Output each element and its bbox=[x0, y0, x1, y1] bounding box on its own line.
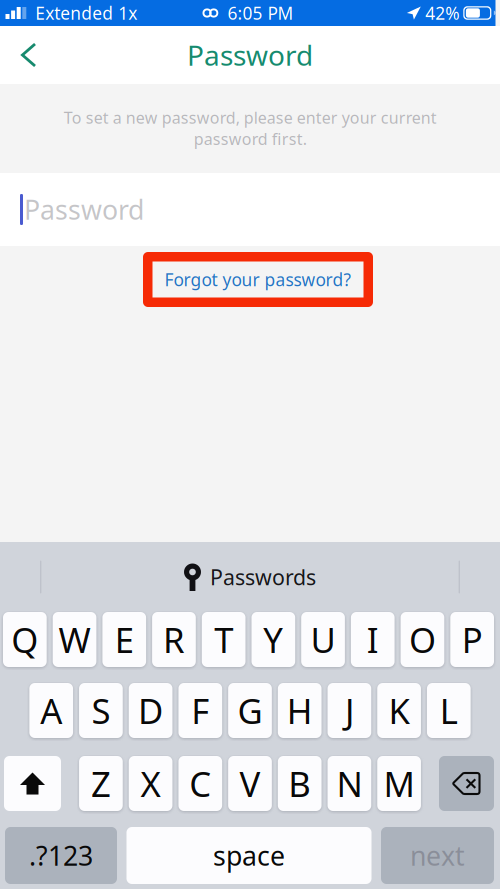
staticText: V bbox=[239, 760, 260, 806]
staticText: O bbox=[409, 616, 436, 662]
button[interactable]: .?123 bbox=[5, 827, 117, 884]
button[interactable]: N bbox=[328, 756, 371, 811]
button[interactable]: Z bbox=[79, 756, 123, 811]
staticText: Passwords bbox=[210, 563, 316, 591]
staticText: H bbox=[287, 687, 313, 733]
button[interactable]: E bbox=[102, 612, 146, 667]
button[interactable]: G bbox=[228, 683, 272, 738]
button[interactable]: Forgot your password? bbox=[143, 252, 373, 307]
staticText: F bbox=[191, 687, 209, 733]
button[interactable]: O bbox=[401, 612, 444, 667]
button[interactable]: R bbox=[152, 612, 196, 667]
staticText: Password bbox=[24, 192, 144, 227]
staticText: Z bbox=[91, 760, 111, 806]
staticText: B bbox=[288, 760, 311, 806]
staticText: Forgot your password? bbox=[164, 268, 351, 291]
staticText: N bbox=[336, 760, 362, 806]
button[interactable]: Q bbox=[3, 612, 47, 667]
staticText: U bbox=[311, 616, 336, 662]
staticText: M bbox=[384, 760, 415, 806]
staticText: W bbox=[59, 616, 91, 662]
staticText: J bbox=[345, 687, 354, 733]
staticText: 6:05 PM bbox=[227, 1, 293, 24]
button[interactable]: P bbox=[450, 612, 494, 667]
staticText: S bbox=[91, 687, 110, 733]
button[interactable]: J bbox=[328, 683, 371, 738]
button[interactable]: C bbox=[178, 756, 222, 811]
staticText: X bbox=[141, 760, 161, 806]
staticText: I bbox=[367, 616, 379, 662]
button[interactable]: L bbox=[427, 683, 471, 738]
staticText: next bbox=[410, 838, 465, 873]
staticText: L bbox=[440, 687, 458, 733]
button[interactable]: Shift bbox=[4, 756, 61, 811]
staticText: A bbox=[40, 687, 62, 733]
button[interactable]: X bbox=[129, 756, 172, 811]
button[interactable]: M bbox=[377, 756, 421, 811]
button[interactable]: H bbox=[278, 683, 322, 738]
button[interactable]: S bbox=[79, 683, 123, 738]
button[interactable]: Passwords bbox=[172, 557, 328, 597]
button[interactable]: space bbox=[126, 827, 371, 884]
button[interactable]: U bbox=[301, 612, 345, 667]
staticText: Extended 1x bbox=[35, 1, 137, 24]
staticText: 42% bbox=[425, 1, 459, 24]
staticText: E bbox=[115, 616, 134, 662]
staticText: Y bbox=[263, 616, 283, 662]
staticText: To set a new password, please enter your… bbox=[63, 107, 436, 149]
button[interactable]: T bbox=[202, 612, 245, 667]
staticText: .?123 bbox=[29, 838, 93, 873]
staticText: T bbox=[214, 616, 233, 662]
button[interactable]: F bbox=[178, 683, 222, 738]
staticText: P bbox=[462, 616, 483, 662]
button[interactable]: Back bbox=[0, 26, 55, 84]
button[interactable]: W bbox=[53, 612, 96, 667]
button[interactable]: K bbox=[377, 683, 421, 738]
button[interactable]: A bbox=[29, 683, 73, 738]
button[interactable]: Y bbox=[251, 612, 295, 667]
staticText: D bbox=[138, 687, 163, 733]
button[interactable]: B bbox=[278, 756, 322, 811]
button[interactable]: I bbox=[351, 612, 395, 667]
staticText: space bbox=[213, 838, 285, 873]
staticText: G bbox=[237, 687, 262, 733]
button[interactable]: D bbox=[129, 683, 172, 738]
staticText: C bbox=[189, 760, 211, 806]
button[interactable]: V bbox=[228, 756, 272, 811]
staticText: R bbox=[163, 616, 185, 662]
button[interactable]: next bbox=[381, 827, 494, 884]
staticText: K bbox=[389, 687, 410, 733]
staticText: Password bbox=[187, 36, 313, 74]
button[interactable]: Delete bbox=[439, 756, 494, 811]
staticText: Q bbox=[11, 616, 38, 662]
